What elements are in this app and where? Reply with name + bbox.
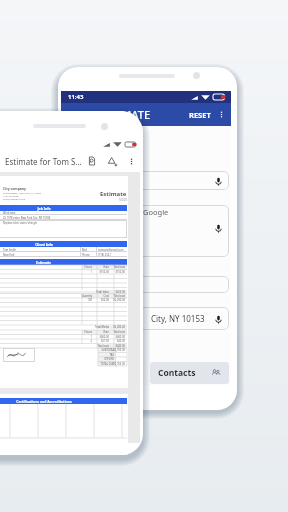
staticText: Total cost xyxy=(102,294,125,298)
staticText: $413.00 xyxy=(102,290,125,294)
staticText: +19172739401 xyxy=(3,194,20,197)
staticText: $150.00 xyxy=(102,270,125,274)
staticText: Total Media xyxy=(86,325,109,329)
button[interactable]: Voice input xyxy=(212,313,224,325)
staticText: Estimate xyxy=(100,190,127,198)
staticText: Total cost xyxy=(86,344,109,348)
staticText: Estimate xyxy=(36,260,51,265)
staticText: 25 Broadway, New York, NY 10004 xyxy=(3,191,42,194)
staticText: Hours xyxy=(69,265,92,269)
staticText: 1 xyxy=(69,270,92,274)
staticText: $2,200.00 xyxy=(102,325,125,329)
staticText: Client Info xyxy=(35,242,53,247)
staticText: $400.00 xyxy=(102,335,125,339)
staticText: $443.00 xyxy=(102,344,125,348)
staticText: $22.00 xyxy=(86,298,109,302)
staticText: City company xyxy=(3,186,26,191)
staticText: (718) 232-1 xyxy=(98,253,112,257)
staticText: 25 1578 enter, New York City, NY 10180 xyxy=(3,216,51,220)
staticText: 11:43 xyxy=(68,93,84,101)
staticText: Google xyxy=(143,207,169,217)
button[interactable]: Google xyxy=(66,205,229,257)
staticText: 1 xyxy=(69,335,92,339)
staticText: 100 xyxy=(69,298,92,302)
button[interactable]: More options xyxy=(125,155,137,167)
staticText: info@company.com xyxy=(3,197,26,200)
staticText: Rate xyxy=(86,330,109,334)
staticText: Work type xyxy=(3,211,16,215)
staticText: Hours xyxy=(69,330,92,334)
staticText: Quantity xyxy=(69,294,92,298)
button[interactable]: More options xyxy=(216,109,227,120)
button[interactable]: Voice input xyxy=(212,175,224,187)
button[interactable]: RESET xyxy=(189,110,211,120)
button[interactable]: City, NY 10153 xyxy=(66,307,229,330)
staticText: Contacts xyxy=(158,367,196,379)
button[interactable]: Contacts xyxy=(150,362,229,384)
staticText: Rate xyxy=(86,265,109,269)
staticText: TAX xyxy=(91,353,114,357)
staticText: Tom Smith xyxy=(3,248,16,252)
staticText: TOTAL DUE xyxy=(91,362,114,366)
button[interactable] xyxy=(66,276,229,293)
staticText: SUBTOTAL xyxy=(91,348,114,352)
staticText: Replace tiles/ stairs/ shingle xyxy=(3,221,37,225)
staticText: $2,763.00 xyxy=(102,348,125,352)
staticText: $43.00 xyxy=(102,339,125,343)
staticText: $2,200.00 xyxy=(102,298,125,302)
staticText: ESTIMATE xyxy=(99,107,151,122)
staticText: Certifications and Accreditations xyxy=(16,399,72,404)
staticText: $2,763.00 xyxy=(102,362,125,366)
staticText: Total cost xyxy=(102,330,125,334)
staticText: City, NY 10153 xyxy=(151,313,205,324)
button[interactable]: ESTIMATE xyxy=(61,103,231,126)
staticText: $21.50 xyxy=(86,339,109,343)
staticText: New York xyxy=(3,253,15,257)
staticText: Job Info xyxy=(37,206,51,211)
staticText: OTHERS xyxy=(91,357,114,361)
staticText: Estimate for Tom S... xyxy=(5,156,82,167)
staticText: RESET xyxy=(189,110,211,120)
button[interactable]: Voice input xyxy=(66,171,229,190)
staticText: $150.00 xyxy=(86,270,109,274)
staticText: Mail xyxy=(82,248,88,252)
staticText: Total cost xyxy=(102,265,125,269)
button[interactable]: Voice input xyxy=(212,222,224,234)
staticText: $400.00 xyxy=(86,335,109,339)
button[interactable]: Save to Drive xyxy=(106,155,118,167)
staticText: Phone xyxy=(82,253,90,257)
staticText: contacts@gmail.com xyxy=(98,248,124,252)
staticText: Cost xyxy=(86,294,109,298)
staticText: 9/2/20 xyxy=(119,198,127,202)
button[interactable]: Preview xyxy=(86,155,98,167)
staticText: 2 xyxy=(69,339,92,343)
staticText: Total labor xyxy=(86,290,109,294)
